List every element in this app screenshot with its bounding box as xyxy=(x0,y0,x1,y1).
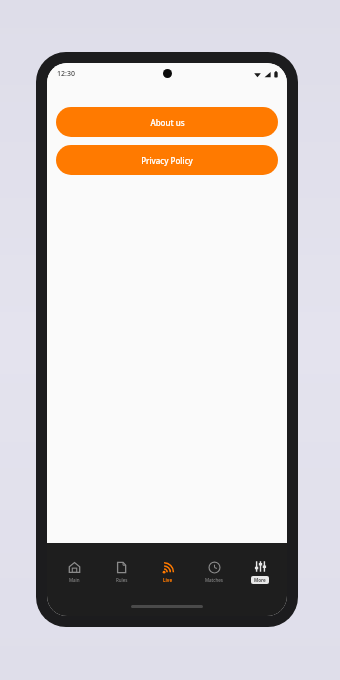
staticText: 12:30 xyxy=(57,69,75,79)
staticText: About us xyxy=(150,117,185,128)
button[interactable]: Live xyxy=(145,543,191,600)
staticText: Privacy Policy xyxy=(141,155,193,166)
staticText: Matches xyxy=(205,577,223,583)
staticText: More xyxy=(254,577,266,583)
button[interactable]: Matches xyxy=(191,543,237,600)
button[interactable]: More xyxy=(237,543,283,600)
staticText: Rules xyxy=(116,577,128,583)
button[interactable]: Rules xyxy=(98,543,145,600)
button[interactable]: Privacy Policy xyxy=(56,145,278,175)
staticText: Main xyxy=(69,577,80,583)
staticText: Live xyxy=(163,577,173,583)
button[interactable]: Main xyxy=(51,543,98,600)
button[interactable]: About us xyxy=(56,107,278,137)
